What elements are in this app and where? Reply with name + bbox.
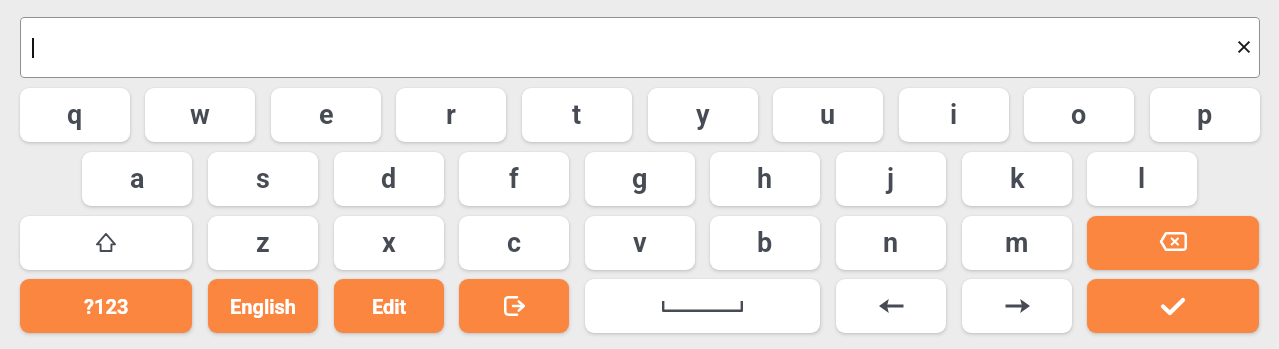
button[interactable]: o xyxy=(1024,88,1134,142)
button[interactable]: v xyxy=(585,216,695,270)
staticText: g xyxy=(632,163,648,195)
staticText: y xyxy=(696,99,710,131)
button[interactable]: k xyxy=(962,152,1072,206)
button[interactable]: Backspace xyxy=(1087,216,1259,270)
button[interactable]: c xyxy=(459,216,569,270)
button[interactable]: d xyxy=(334,152,444,206)
button[interactable]: h xyxy=(710,152,820,206)
staticText: u xyxy=(820,99,836,131)
button[interactable]: Shift xyxy=(20,216,192,270)
button[interactable]: b xyxy=(710,216,820,270)
button[interactable]: p xyxy=(1150,88,1260,142)
staticText: o xyxy=(1071,99,1087,131)
button[interactable]: z xyxy=(208,216,318,270)
button[interactable]: i xyxy=(899,88,1009,142)
button[interactable]: x xyxy=(334,216,444,270)
staticText: ?123 xyxy=(84,295,129,318)
staticText: t xyxy=(572,99,582,131)
staticText: l xyxy=(1138,163,1146,195)
button[interactable]: Clear text xyxy=(20,17,1260,78)
button[interactable]: Clear text xyxy=(1231,35,1257,61)
staticText: d xyxy=(381,163,397,195)
staticText: v xyxy=(633,227,647,259)
staticText: h xyxy=(757,163,773,195)
staticText: n xyxy=(883,227,899,259)
staticText: m xyxy=(1005,227,1029,259)
staticText: j xyxy=(887,163,895,195)
button[interactable]: f xyxy=(459,152,569,206)
button[interactable]: g xyxy=(585,152,695,206)
staticText: b xyxy=(757,227,773,259)
button[interactable]: Space xyxy=(585,279,820,333)
button[interactable]: r xyxy=(396,88,506,142)
button[interactable]: w xyxy=(145,88,255,142)
staticText: p xyxy=(1197,99,1213,131)
button[interactable]: e xyxy=(271,88,381,142)
button[interactable]: t xyxy=(522,88,632,142)
staticText: English xyxy=(230,295,296,318)
staticText: c xyxy=(507,227,522,259)
staticText: k xyxy=(1010,163,1025,195)
button[interactable]: s xyxy=(208,152,318,206)
button[interactable]: a xyxy=(82,152,192,206)
staticText: i xyxy=(950,99,958,131)
button[interactable]: Move cursor left xyxy=(836,279,946,333)
button[interactable]: Move cursor right xyxy=(962,279,1072,333)
button[interactable]: n xyxy=(836,216,946,270)
button[interactable]: u xyxy=(773,88,883,142)
button[interactable]: English xyxy=(208,279,318,333)
button[interactable]: j xyxy=(836,152,946,206)
button[interactable]: m xyxy=(962,216,1072,270)
button[interactable]: q xyxy=(20,88,130,142)
staticText: s xyxy=(256,163,270,195)
staticText: w xyxy=(190,99,210,131)
button[interactable]: l xyxy=(1087,152,1197,206)
staticText: f xyxy=(509,163,519,195)
staticText: q xyxy=(67,99,83,131)
button[interactable]: Edit xyxy=(334,279,444,333)
staticText: e xyxy=(319,99,334,131)
button[interactable]: ?123 xyxy=(20,279,192,333)
staticText: Edit xyxy=(372,295,407,318)
button[interactable]: Switch keyboard xyxy=(459,279,569,333)
button[interactable]: Enter xyxy=(1087,279,1259,333)
staticText: z xyxy=(256,227,270,259)
staticText: a xyxy=(130,163,145,195)
staticText: r xyxy=(446,99,456,131)
staticText: x xyxy=(382,227,396,259)
button[interactable]: y xyxy=(648,88,758,142)
